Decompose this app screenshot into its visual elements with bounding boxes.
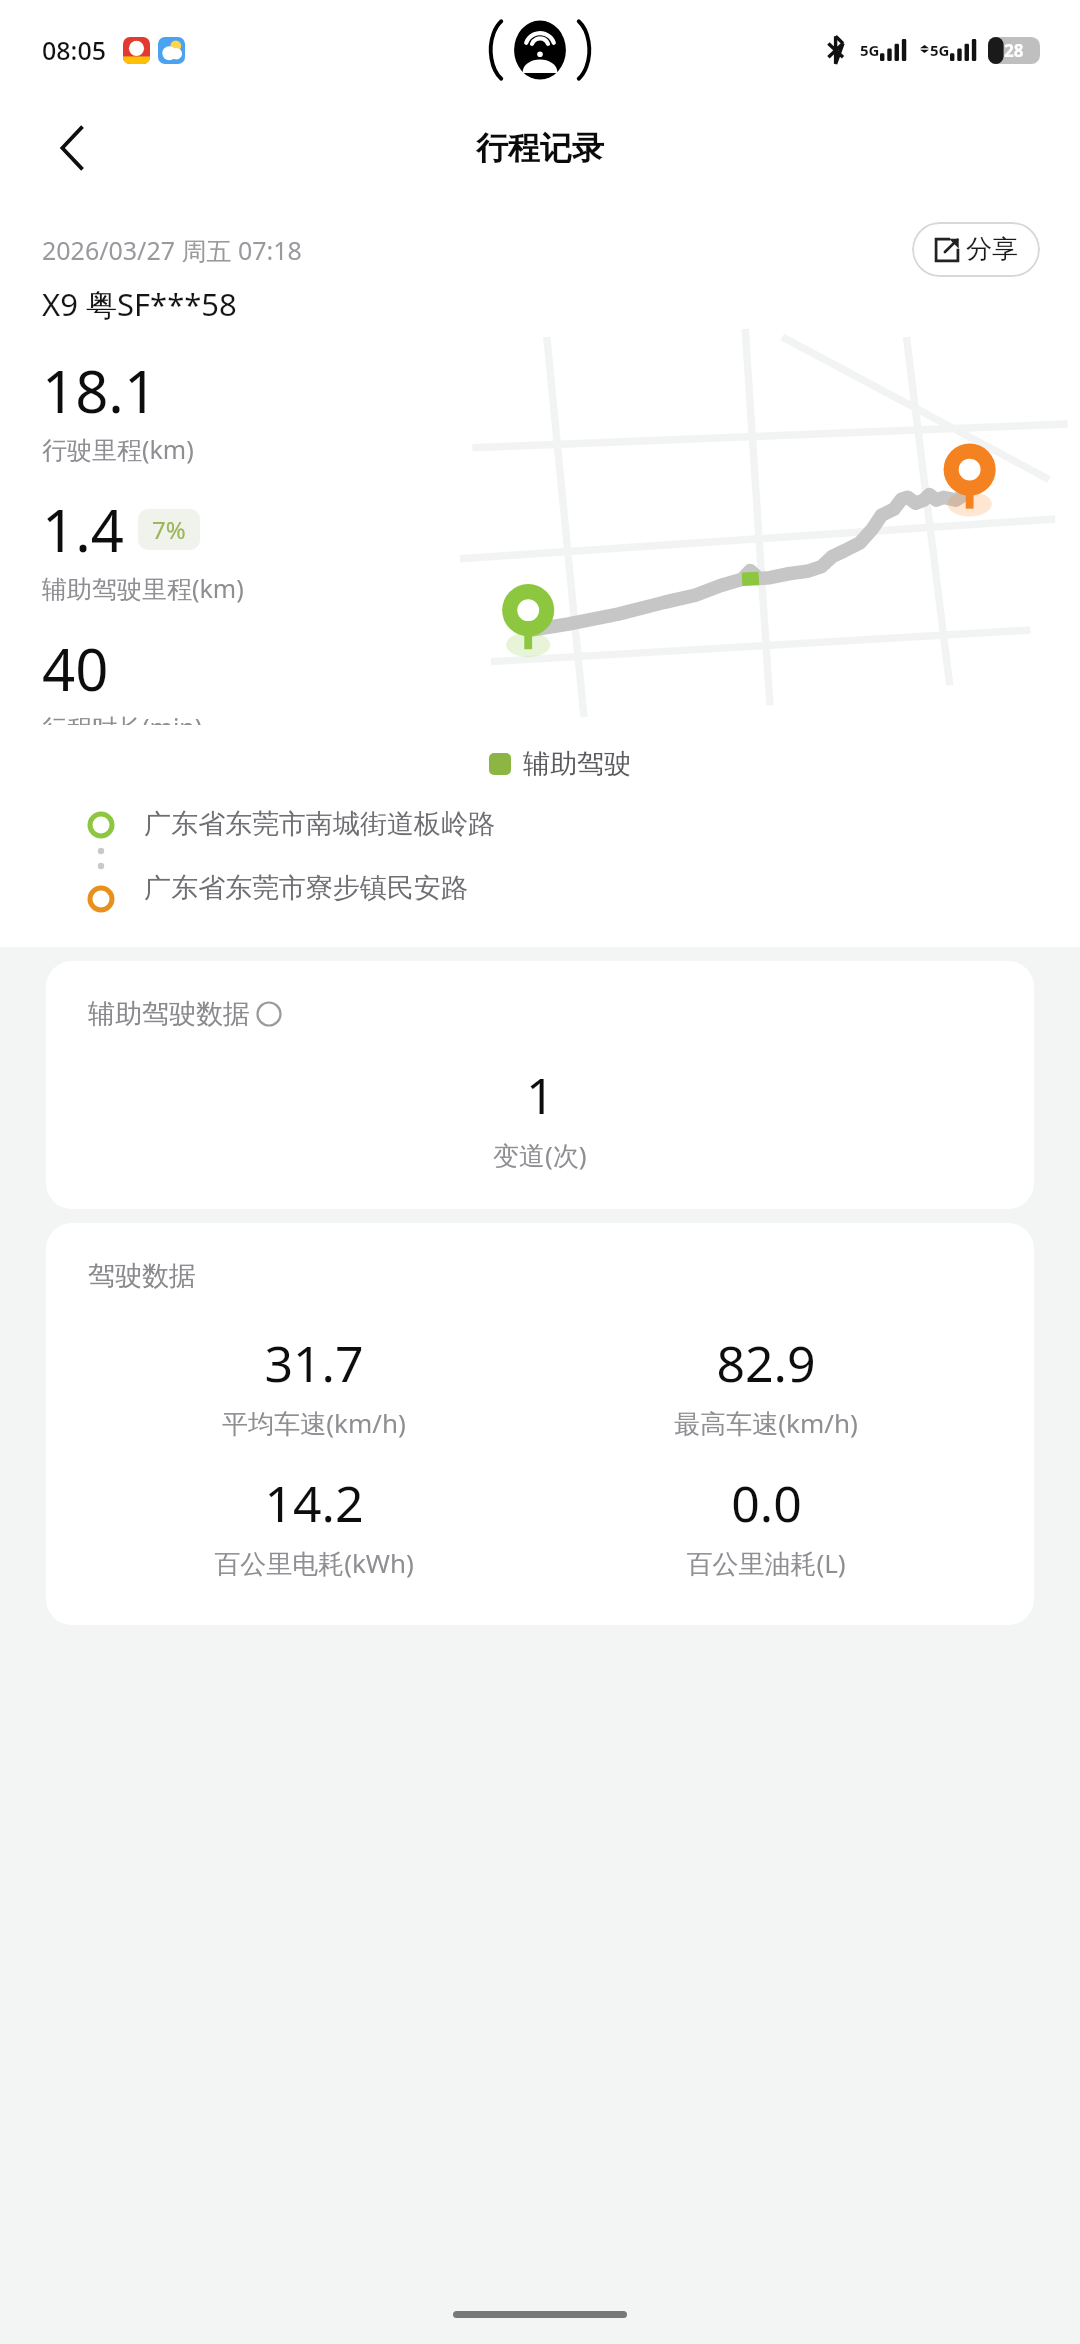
- staticText: 驾驶数据: [88, 1259, 196, 1293]
- staticText: 辅助驾驶: [523, 747, 631, 781]
- staticText: 行程记录: [476, 128, 604, 168]
- staticText: 1: [526, 1061, 555, 1129]
- staticText: 行程时长(min): [42, 710, 203, 725]
- staticText: 5G: [860, 40, 880, 60]
- staticText: 百公里油耗(L): [686, 1545, 846, 1581]
- staticText: 行驶里程(km): [42, 432, 194, 466]
- staticText: 变道(次): [493, 1137, 587, 1173]
- staticText: 平均车速(km/h): [222, 1405, 406, 1441]
- staticText: 分享: [966, 233, 1018, 266]
- staticText: 百公里电耗(kWh): [214, 1545, 414, 1581]
- staticText: 18.1: [42, 351, 158, 430]
- staticText: X9 粤SF***58: [42, 283, 237, 325]
- button[interactable]: 驾驶数据: [46, 1223, 1034, 1625]
- button[interactable]: 分享: [912, 222, 1040, 277]
- staticText: 82.9: [716, 1329, 816, 1397]
- staticText: 14.2: [264, 1469, 364, 1537]
- staticText: 31.7: [264, 1329, 364, 1397]
- staticText: 广东省东莞市寮步镇民安路: [144, 871, 468, 905]
- staticText: 辅助驾驶数据: [88, 997, 250, 1031]
- staticText: 40: [42, 629, 109, 708]
- staticText: 0.0: [731, 1469, 802, 1537]
- staticText: 最高车速(km/h): [674, 1405, 858, 1441]
- staticText: 28: [1004, 39, 1024, 62]
- staticText: 辅助驾驶里程(km): [42, 571, 244, 605]
- staticText: 7%: [152, 513, 186, 546]
- staticText: 08:05: [42, 33, 107, 67]
- button[interactable]: 辅助驾驶数据: [46, 961, 1034, 1209]
- staticText: 1.4: [42, 490, 124, 569]
- staticText: 5G: [930, 40, 950, 60]
- staticText: 广东省东莞市南城街道板岭路: [144, 807, 495, 841]
- button[interactable]: 返回: [44, 120, 100, 176]
- staticText: 2026/03/27 周五 07:18: [42, 233, 302, 267]
